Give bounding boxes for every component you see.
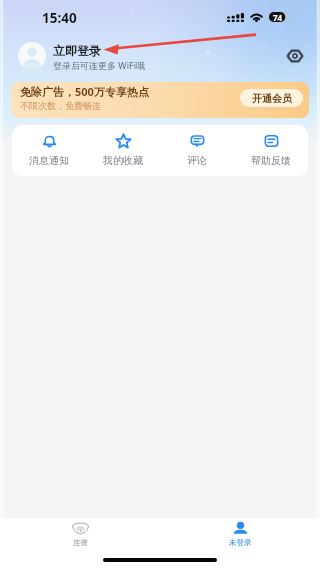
button[interactable]: Settings: [280, 41, 310, 71]
staticText: 开通会员: [252, 92, 292, 105]
button[interactable]: 连接: [0, 518, 160, 550]
staticText: 登录后可连更多 WiFi哦: [53, 59, 146, 71]
staticText: 不限次数，免费畅连: [20, 100, 101, 111]
staticText: 74: [273, 12, 283, 22]
button[interactable]: 帮助反馈: [234, 125, 308, 176]
staticText: 连接: [73, 538, 88, 547]
staticText: 15:40: [42, 9, 77, 27]
button[interactable]: 我的收藏: [86, 125, 160, 176]
staticText: 消息通知: [29, 154, 69, 167]
button[interactable]: 评论: [160, 125, 234, 176]
button[interactable]: 未登录: [160, 518, 320, 550]
button[interactable]: 开通会员: [240, 89, 303, 107]
button[interactable]: 立即登录: [0, 36, 320, 76]
staticText: 我的收藏: [103, 154, 143, 167]
button[interactable]: 免除广告，500万专享热点: [11, 82, 309, 118]
staticText: 帮助反馈: [251, 154, 291, 167]
button[interactable]: 消息通知: [12, 125, 86, 176]
staticText: 免除广告，500万专享热点: [20, 84, 149, 99]
staticText: 立即登录: [53, 43, 101, 58]
staticText: 未登录: [229, 538, 252, 547]
staticText: 评论: [187, 154, 207, 167]
